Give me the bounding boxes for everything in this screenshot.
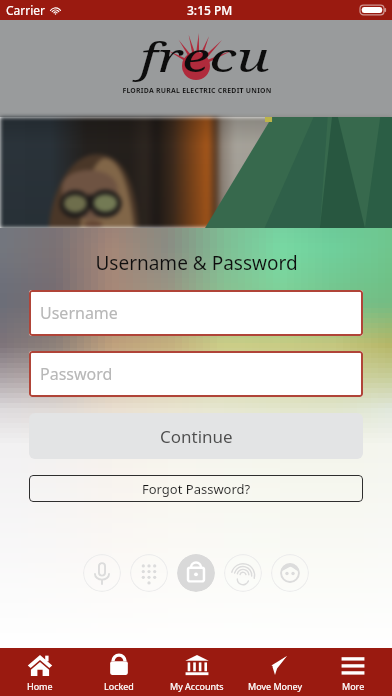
button[interactable]: Continue [29, 413, 363, 459]
button[interactable]: Username [29, 290, 363, 336]
button[interactable]: Keypad [130, 554, 168, 592]
button[interactable]: Voice [83, 554, 121, 592]
staticText: Username & Password [95, 250, 298, 276]
button[interactable]: Forgot Password? [29, 475, 363, 502]
button[interactable]: Fingerprint [224, 554, 262, 592]
staticText: Locked [104, 680, 134, 692]
staticText: Home [27, 680, 53, 692]
staticText: Move Money [248, 680, 303, 692]
button[interactable]: More [314, 648, 392, 696]
staticText: Carrier [6, 2, 46, 18]
button[interactable]: Face ID [271, 554, 309, 592]
button[interactable]: Locked [79, 648, 158, 696]
staticText: Forgot Password? [142, 480, 251, 498]
staticText: My Accounts [170, 680, 224, 692]
button[interactable]: Lock [177, 554, 215, 592]
staticText: More [342, 680, 365, 692]
button[interactable]: Home [0, 648, 79, 696]
button[interactable]: Password [29, 351, 363, 397]
staticText: Password [40, 363, 113, 385]
staticText: 3:15 PM [187, 2, 233, 18]
staticText: frecu [140, 29, 270, 83]
staticText: Username [40, 302, 118, 324]
button[interactable]: Move Money [236, 648, 314, 696]
staticText: Continue [160, 425, 233, 448]
staticText: FLORIDA RURAL ELECTRIC CREDIT UNION [122, 86, 272, 95]
button[interactable]: My Accounts [158, 648, 236, 696]
